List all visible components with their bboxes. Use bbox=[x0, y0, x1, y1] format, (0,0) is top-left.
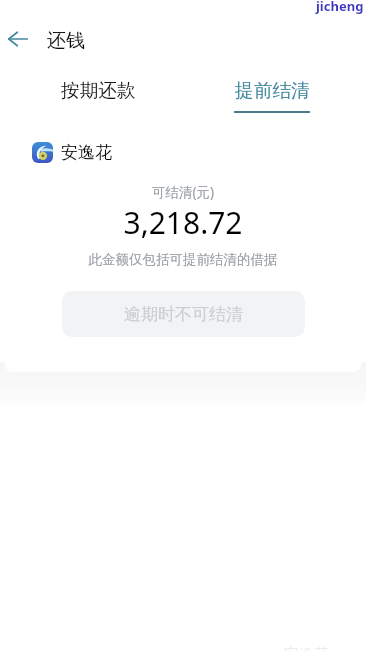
staticText: 按期还款 bbox=[61, 79, 136, 103]
staticText: 安逸花 bbox=[61, 142, 112, 163]
staticText: 安逸花 bbox=[284, 645, 329, 651]
staticText: 此金额仅包括可提前结清的借据 bbox=[0, 251, 366, 268]
staticText: 提前结清 bbox=[235, 79, 310, 103]
staticText: 还钱 bbox=[47, 29, 85, 53]
staticText: 逾期时不可结清 bbox=[124, 304, 243, 325]
button[interactable]: 提前结清 bbox=[233, 74, 311, 116]
button[interactable]: 按期还款 bbox=[59, 74, 137, 110]
button[interactable]: Back bbox=[0, 21, 36, 57]
staticText: 可结清(元) bbox=[0, 183, 366, 201]
button[interactable]: 逾期时不可结清 bbox=[62, 291, 305, 337]
staticText: 3,218.72 bbox=[0, 202, 366, 243]
staticText: jicheng bbox=[316, 0, 364, 15]
